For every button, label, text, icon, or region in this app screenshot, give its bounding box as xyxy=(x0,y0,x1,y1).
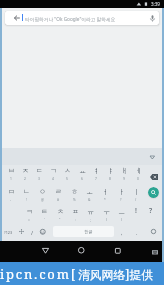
button[interactable] xyxy=(148,187,159,198)
button[interactable]: ㅇ xyxy=(34,185,50,197)
staticText: 한글 xyxy=(84,229,93,234)
staticText: ㅣ xyxy=(133,187,140,196)
button[interactable] xyxy=(146,151,158,163)
button[interactable]: ㅍ xyxy=(67,205,83,217)
staticText: - xyxy=(10,197,12,201)
button[interactable]: ! xyxy=(128,205,144,217)
staticText: ㄴ xyxy=(23,187,30,196)
staticText: ㅛ xyxy=(79,166,86,175)
button[interactable]: ㅏ xyxy=(113,185,129,197)
staticText: / xyxy=(31,229,34,236)
button[interactable] xyxy=(15,226,27,237)
staticText: ! xyxy=(26,197,27,201)
staticText: 4 xyxy=(52,176,54,180)
button[interactable]: ㅁ xyxy=(3,185,19,197)
staticText: ㅍ xyxy=(72,207,79,216)
staticText: 8 xyxy=(109,176,111,180)
staticText: % xyxy=(73,197,76,201)
button[interactable] xyxy=(145,11,159,25)
staticText: ㅂ xyxy=(8,166,15,175)
staticText: ? xyxy=(120,197,122,201)
button[interactable]: ㅑ xyxy=(102,164,118,176)
button[interactable]: ㅅ xyxy=(59,164,75,176)
staticText: 타이핑하거나 "Ok Google"이라고 말하세요 xyxy=(25,16,116,22)
staticText: ) xyxy=(121,217,122,221)
staticText: ; xyxy=(90,217,91,221)
button[interactable] xyxy=(37,226,49,237)
staticText: / xyxy=(135,197,137,201)
staticText: ㅗ xyxy=(86,187,93,196)
staticText: 9 xyxy=(123,176,125,180)
button[interactable]: , xyxy=(116,226,128,238)
staticText: ㅑ xyxy=(107,166,114,175)
button[interactable]: ㅌ xyxy=(36,205,52,217)
staticText: * xyxy=(104,197,106,201)
button[interactable]: ㅠ xyxy=(82,205,98,217)
button[interactable]: ㅈ xyxy=(17,164,33,176)
staticText: ㅈ xyxy=(22,166,29,175)
button[interactable]: 한글 xyxy=(53,226,114,237)
staticText: ' xyxy=(44,217,45,221)
button[interactable]: ㄹ xyxy=(50,185,66,197)
staticText: ㄷ xyxy=(36,166,43,175)
button[interactable]: . xyxy=(131,226,143,238)
button[interactable]: ㅣ xyxy=(128,185,144,197)
staticText: 清风网络]提供 xyxy=(78,266,154,282)
button[interactable]: ㅕ xyxy=(88,164,104,176)
button[interactable]: ㄷ xyxy=(31,164,47,176)
staticText: ㅕ xyxy=(93,166,100,175)
button[interactable]: ㅡ xyxy=(113,205,129,217)
button[interactable]: ㅎ xyxy=(66,185,82,197)
staticText: ㄱ xyxy=(50,166,57,175)
staticText: ㅁ xyxy=(8,187,15,196)
staticText: ! xyxy=(135,206,137,216)
button[interactable] xyxy=(38,244,53,257)
button[interactable]: 타이핑하거나 "Ok Google"이라고 말하세요 xyxy=(5,11,159,25)
staticText: @ xyxy=(41,197,44,201)
button[interactable]: ㅊ xyxy=(52,205,68,217)
staticText: ㅎ xyxy=(71,187,78,196)
staticText: # xyxy=(57,197,60,201)
staticText: 1 xyxy=(10,176,12,180)
staticText: ( xyxy=(106,217,107,221)
staticText: ㅓ xyxy=(102,187,109,196)
button[interactable] xyxy=(74,244,89,257)
button[interactable]: ? xyxy=(143,205,159,217)
button[interactable]: ㅓ xyxy=(97,185,113,197)
staticText: ㅜ xyxy=(103,207,110,216)
staticText: & xyxy=(88,197,91,201)
button[interactable] xyxy=(110,244,125,257)
staticText: ㄹ xyxy=(55,187,62,196)
staticText: ㅔ xyxy=(135,166,142,175)
button[interactable]: / xyxy=(26,226,38,238)
button[interactable]: ㅂ xyxy=(3,164,19,176)
button[interactable]: ㅐ xyxy=(116,164,132,176)
button[interactable]: ㄱ xyxy=(45,164,61,176)
button[interactable]: ㅔ xyxy=(130,164,146,176)
staticText: 6 xyxy=(81,176,83,180)
staticText: ㅏ xyxy=(118,187,125,196)
staticText: . xyxy=(136,229,138,236)
button[interactable]: ㅗ xyxy=(81,185,97,197)
button[interactable] xyxy=(147,226,159,237)
button[interactable]: ㄴ xyxy=(18,185,34,197)
staticText: ㅊ xyxy=(57,207,64,216)
staticText: 0 xyxy=(137,176,139,180)
staticText: ㅡ xyxy=(118,207,125,216)
staticText: ㅇ xyxy=(39,187,46,196)
button[interactable]: ㅜ xyxy=(98,205,114,217)
staticText: ㅌ xyxy=(41,207,48,216)
button[interactable]: ㅋ xyxy=(21,205,37,217)
staticText: 3 xyxy=(38,176,40,180)
button[interactable]: ?123 xyxy=(1,226,15,238)
button[interactable] xyxy=(146,170,161,183)
button[interactable]: ㅛ xyxy=(74,164,90,176)
staticText: " xyxy=(59,217,61,221)
staticText: ㅐ xyxy=(121,166,128,175)
button[interactable] xyxy=(9,11,25,25)
staticText: 2 xyxy=(24,176,26,180)
staticText: = xyxy=(28,217,30,221)
staticText: ipcn.com[ xyxy=(0,265,78,283)
button[interactable] xyxy=(149,247,161,258)
staticText: ㅅ xyxy=(64,166,71,175)
